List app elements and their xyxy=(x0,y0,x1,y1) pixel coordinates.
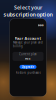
staticText: Your Account xyxy=(14,35,41,41)
staticText: Free xyxy=(25,57,31,60)
staticText: Current plan xyxy=(19,52,37,56)
staticText: Upgrade xyxy=(21,65,34,69)
staticText: Manage your plan and billing xyxy=(13,41,43,48)
button[interactable]: Upgrade xyxy=(19,65,36,69)
staticText: Restore purchases xyxy=(15,71,40,74)
staticText: subscription option xyxy=(3,11,52,18)
staticText: Select your xyxy=(14,4,42,11)
staticText: ●●● xyxy=(37,23,43,26)
